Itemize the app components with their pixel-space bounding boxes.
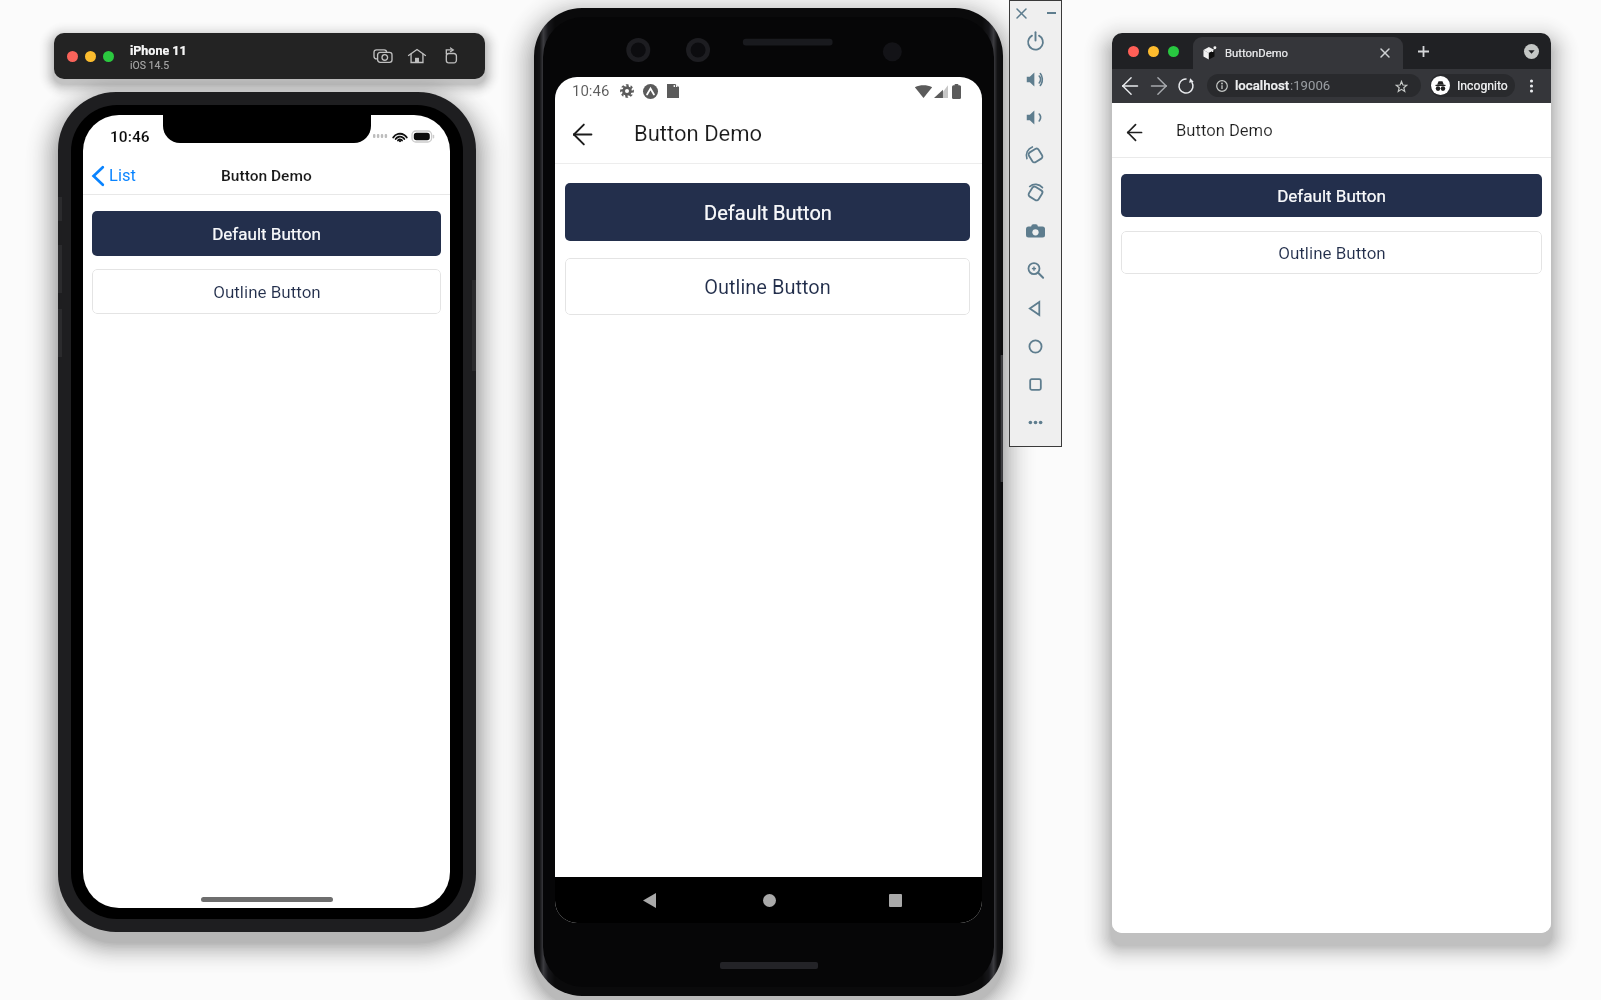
button[interactable]: Search tabs <box>1520 40 1542 62</box>
staticText: ButtonDemo <box>1225 47 1288 60</box>
button[interactable]: Back <box>627 878 671 922</box>
staticText: :19006 <box>1290 78 1331 93</box>
button[interactable]: Reload <box>1174 74 1198 98</box>
button[interactable]: Outline Button <box>92 269 441 314</box>
button[interactable]: Rotate <box>438 43 464 69</box>
button[interactable]: Forward <box>1147 74 1171 98</box>
button[interactable]: Default Button <box>1121 174 1542 217</box>
button[interactable]: Default Button <box>92 211 441 256</box>
button[interactable]: More <box>1017 404 1054 441</box>
staticText: iPhone 11 <box>130 43 187 58</box>
staticText: Incognito <box>1457 79 1508 93</box>
button[interactable]: Zoom <box>1017 252 1054 289</box>
staticText: iOS 14.5 <box>130 59 170 71</box>
button[interactable]: Outline Button <box>565 258 970 315</box>
button[interactable]: Back <box>560 112 604 156</box>
button[interactable]: ButtonDemo <box>1193 37 1403 69</box>
button[interactable]: Volume down <box>1017 99 1054 136</box>
button[interactable]: Screenshot <box>370 43 396 69</box>
button[interactable]: localhost <box>1207 74 1421 97</box>
button[interactable]: Volume up <box>1017 61 1054 98</box>
button[interactable]: Power <box>1017 22 1054 59</box>
staticText: Default Button <box>212 224 321 244</box>
button[interactable]: Bookmark <box>1393 78 1409 94</box>
button[interactable]: Close <box>1012 4 1030 22</box>
button[interactable]: Default Button <box>565 183 970 241</box>
button[interactable]: Rotate right <box>1017 175 1054 212</box>
staticText: 10:46 <box>572 82 610 100</box>
button[interactable]: Incognito <box>1430 74 1515 97</box>
staticText: Button Demo <box>634 121 763 147</box>
button[interactable]: Home <box>1017 328 1054 365</box>
button[interactable]: Back <box>1118 74 1142 98</box>
staticText: Outline Button <box>1278 243 1386 263</box>
button[interactable]: New tab <box>1412 40 1434 62</box>
button[interactable]: Recents <box>873 878 917 922</box>
button[interactable]: Back <box>1114 112 1154 152</box>
button[interactable]: Home <box>404 43 430 69</box>
staticText: Outline Button <box>704 275 831 298</box>
button[interactable]: Home <box>747 878 791 922</box>
button[interactable]: More options <box>1520 75 1542 97</box>
staticText: 10:46 <box>110 128 150 146</box>
staticText: Default Button <box>704 201 832 224</box>
staticText: Default Button <box>1277 186 1386 206</box>
staticText: Outline Button <box>213 282 321 302</box>
staticText: localhost <box>1235 78 1290 93</box>
button[interactable]: Overview <box>1017 366 1054 403</box>
button[interactable]: Screenshot <box>1017 213 1054 250</box>
button[interactable]: Back <box>1017 290 1054 327</box>
button[interactable]: Close tab <box>1376 44 1394 62</box>
button[interactable]: Outline Button <box>1121 231 1542 274</box>
staticText: Button Demo <box>221 167 312 185</box>
staticText: List <box>109 166 136 185</box>
button[interactable]: Minimize <box>1042 4 1060 22</box>
staticText: Button Demo <box>1176 121 1273 140</box>
button[interactable]: Rotate left <box>1017 137 1054 174</box>
button[interactable]: List <box>92 163 136 188</box>
